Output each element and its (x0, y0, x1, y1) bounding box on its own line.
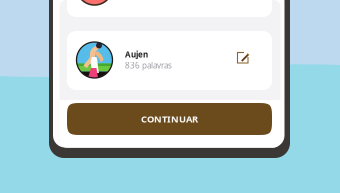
button[interactable]: Olívia (67, 0, 272, 17)
staticText: 836 palavras (125, 60, 172, 71)
staticText: Aujen (125, 49, 148, 60)
button[interactable]: CONTINUAR (67, 103, 272, 135)
button[interactable]: Aujen (67, 31, 272, 90)
staticText: CONTINUAR (141, 113, 198, 125)
